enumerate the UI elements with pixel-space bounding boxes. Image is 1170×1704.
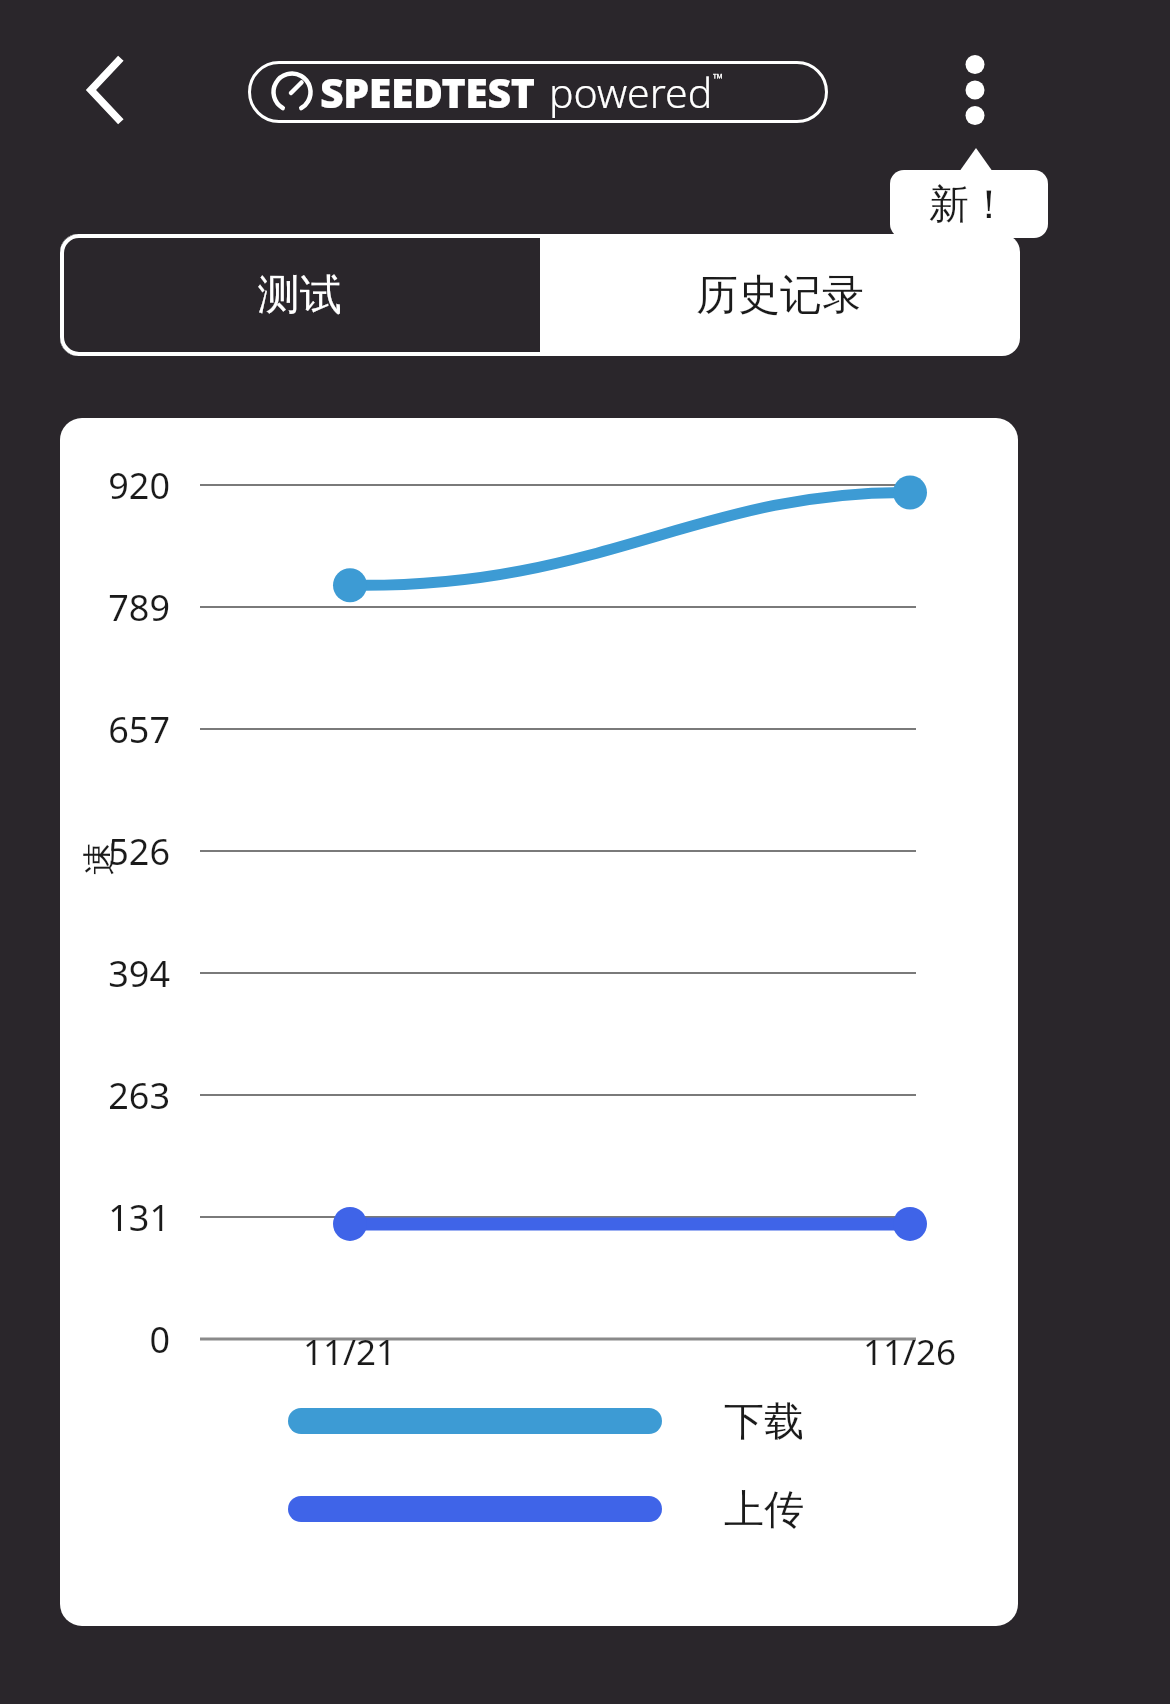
button[interactable]: 上传 xyxy=(288,1481,804,1537)
button[interactable]: More options xyxy=(930,40,1020,140)
staticText: 526 xyxy=(108,827,170,876)
staticText: 657 xyxy=(108,705,170,754)
button[interactable]: 测试 xyxy=(60,234,540,356)
staticText: 789 xyxy=(108,583,170,632)
staticText: 394 xyxy=(108,949,170,998)
button[interactable]: Back xyxy=(62,47,148,133)
staticText: 历史记录 xyxy=(696,269,864,322)
staticText: SPEEDTEST xyxy=(320,64,535,120)
button[interactable]: 历史记录 xyxy=(540,234,1020,356)
staticText: 131 xyxy=(108,1193,170,1242)
staticText: 11/21 xyxy=(303,1328,397,1376)
staticText: ™ xyxy=(713,69,724,87)
staticText: 下载 xyxy=(724,1396,804,1446)
staticText: 新！ xyxy=(929,179,1009,229)
staticText: 263 xyxy=(108,1071,170,1120)
staticText: 920 xyxy=(108,461,170,510)
button[interactable]: 新！ xyxy=(890,148,1048,238)
staticText: 上传 xyxy=(724,1484,804,1534)
staticText: powered xyxy=(549,64,713,120)
staticText: 11/26 xyxy=(863,1328,957,1376)
button[interactable]: 下载 xyxy=(288,1393,804,1449)
staticText: 速度 (Mbps) xyxy=(77,821,120,875)
staticText: 测试 xyxy=(258,269,342,322)
staticText: 0 xyxy=(149,1315,170,1364)
